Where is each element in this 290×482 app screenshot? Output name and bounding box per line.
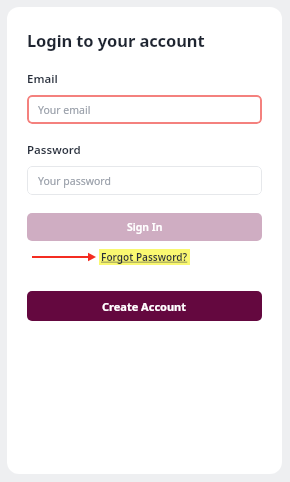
button[interactable]: Create Account xyxy=(27,291,262,321)
button[interactable]: Your password xyxy=(27,166,262,195)
button[interactable]: Forgot Password? xyxy=(99,249,190,265)
other: Arrow pointing to Forgot Password xyxy=(32,250,96,264)
staticText: Login to your account xyxy=(27,29,205,51)
staticText: Create Account xyxy=(102,299,187,314)
staticText: Email xyxy=(27,71,58,87)
staticText: Your password xyxy=(38,174,111,188)
staticText: Forgot Password? xyxy=(101,250,188,264)
staticText: Your email xyxy=(38,103,91,117)
staticText: Password xyxy=(27,142,81,158)
button[interactable]: Your email xyxy=(27,95,262,124)
button[interactable]: Sign In xyxy=(27,213,262,241)
staticText: Sign In xyxy=(127,220,163,234)
